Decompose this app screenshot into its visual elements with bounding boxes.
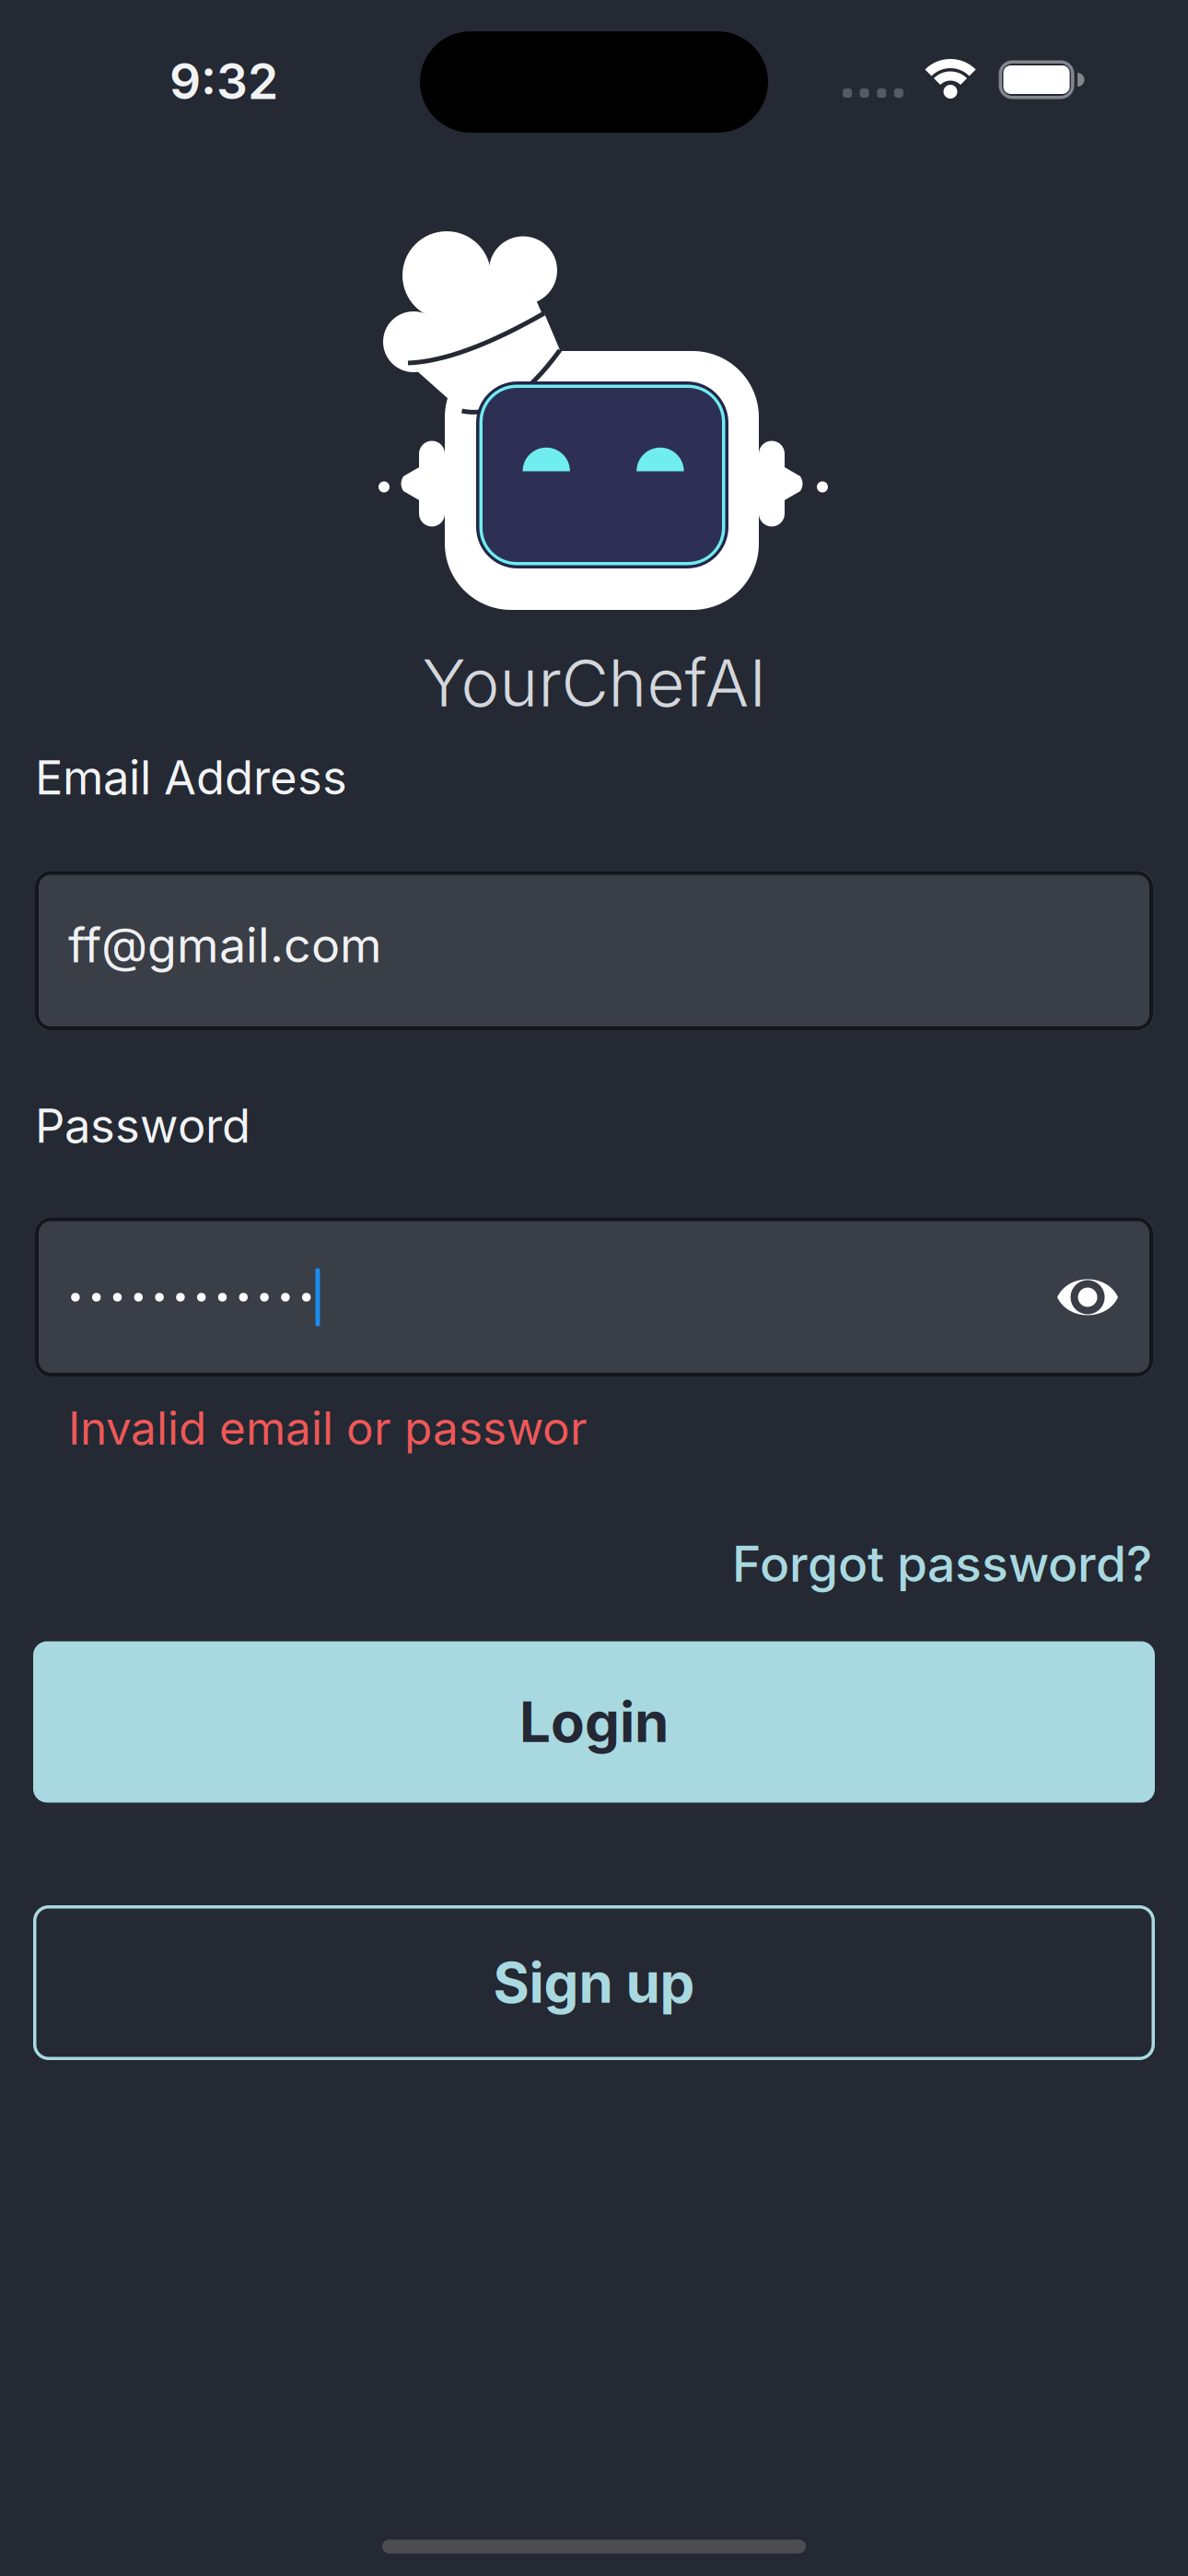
staticText: Invalid email or passwor bbox=[68, 1401, 588, 1455]
staticText: Login bbox=[519, 1689, 669, 1755]
staticText: Forgot password? bbox=[732, 1535, 1152, 1593]
staticText: ff@gmail.com bbox=[68, 917, 382, 973]
button[interactable]: Sign up bbox=[33, 1905, 1155, 2060]
staticText: 9:32 bbox=[169, 52, 278, 110]
staticText: Sign up bbox=[493, 1950, 695, 2015]
staticText: Password bbox=[35, 1098, 250, 1153]
button[interactable]: Show password bbox=[1051, 1260, 1124, 1334]
staticText: YourChefAI bbox=[422, 644, 767, 721]
button[interactable]: Login bbox=[33, 1641, 1155, 1803]
staticText: Email Address bbox=[35, 750, 347, 805]
button[interactable]: Forgot password? bbox=[732, 1535, 1152, 1593]
